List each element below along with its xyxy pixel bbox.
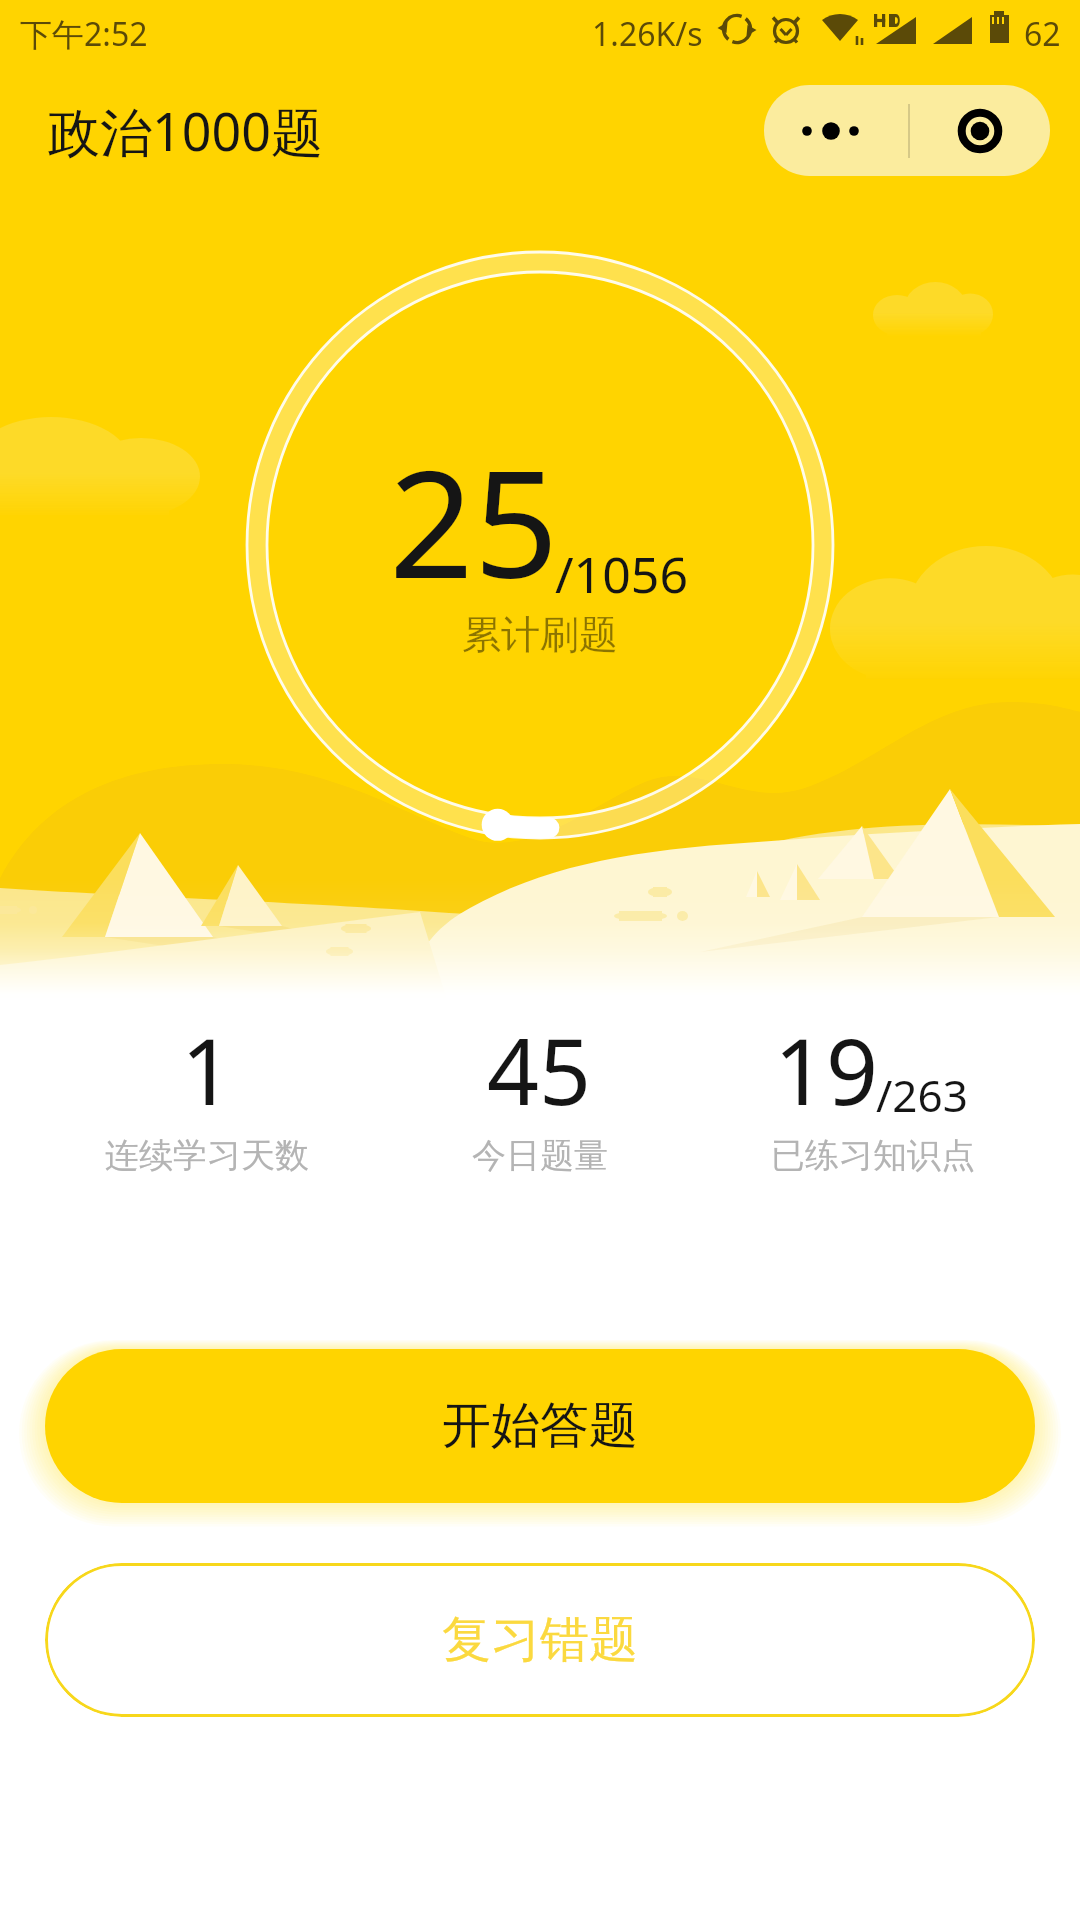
staticText: /1056 bbox=[555, 540, 688, 608]
button[interactable]: Close mini program bbox=[910, 85, 1050, 176]
staticText: 已练习知识点 bbox=[771, 1134, 975, 1177]
staticText: 1.26K/s bbox=[592, 12, 703, 56]
button[interactable]: 复习错题 bbox=[45, 1563, 1035, 1717]
staticText: /263 bbox=[876, 1065, 968, 1125]
button[interactable]: More options bbox=[764, 85, 908, 176]
staticText: 政治1000题 bbox=[48, 95, 323, 166]
staticText: 复习错题 bbox=[442, 1609, 638, 1671]
button[interactable]: 开始答题 bbox=[45, 1349, 1035, 1503]
staticText: 下午2:52 bbox=[20, 12, 148, 56]
staticText: 62 bbox=[1024, 12, 1061, 56]
staticText: 1 bbox=[181, 1008, 234, 1132]
staticText: 开始答题 bbox=[442, 1395, 638, 1457]
staticText: 45 bbox=[487, 1008, 592, 1132]
staticText: 今日题量 bbox=[472, 1134, 608, 1177]
staticText: 25 bbox=[389, 420, 559, 622]
staticText: 累计刷题 bbox=[462, 610, 618, 659]
staticText: 19 bbox=[774, 1008, 879, 1132]
staticText: 连续学习天数 bbox=[105, 1134, 309, 1177]
